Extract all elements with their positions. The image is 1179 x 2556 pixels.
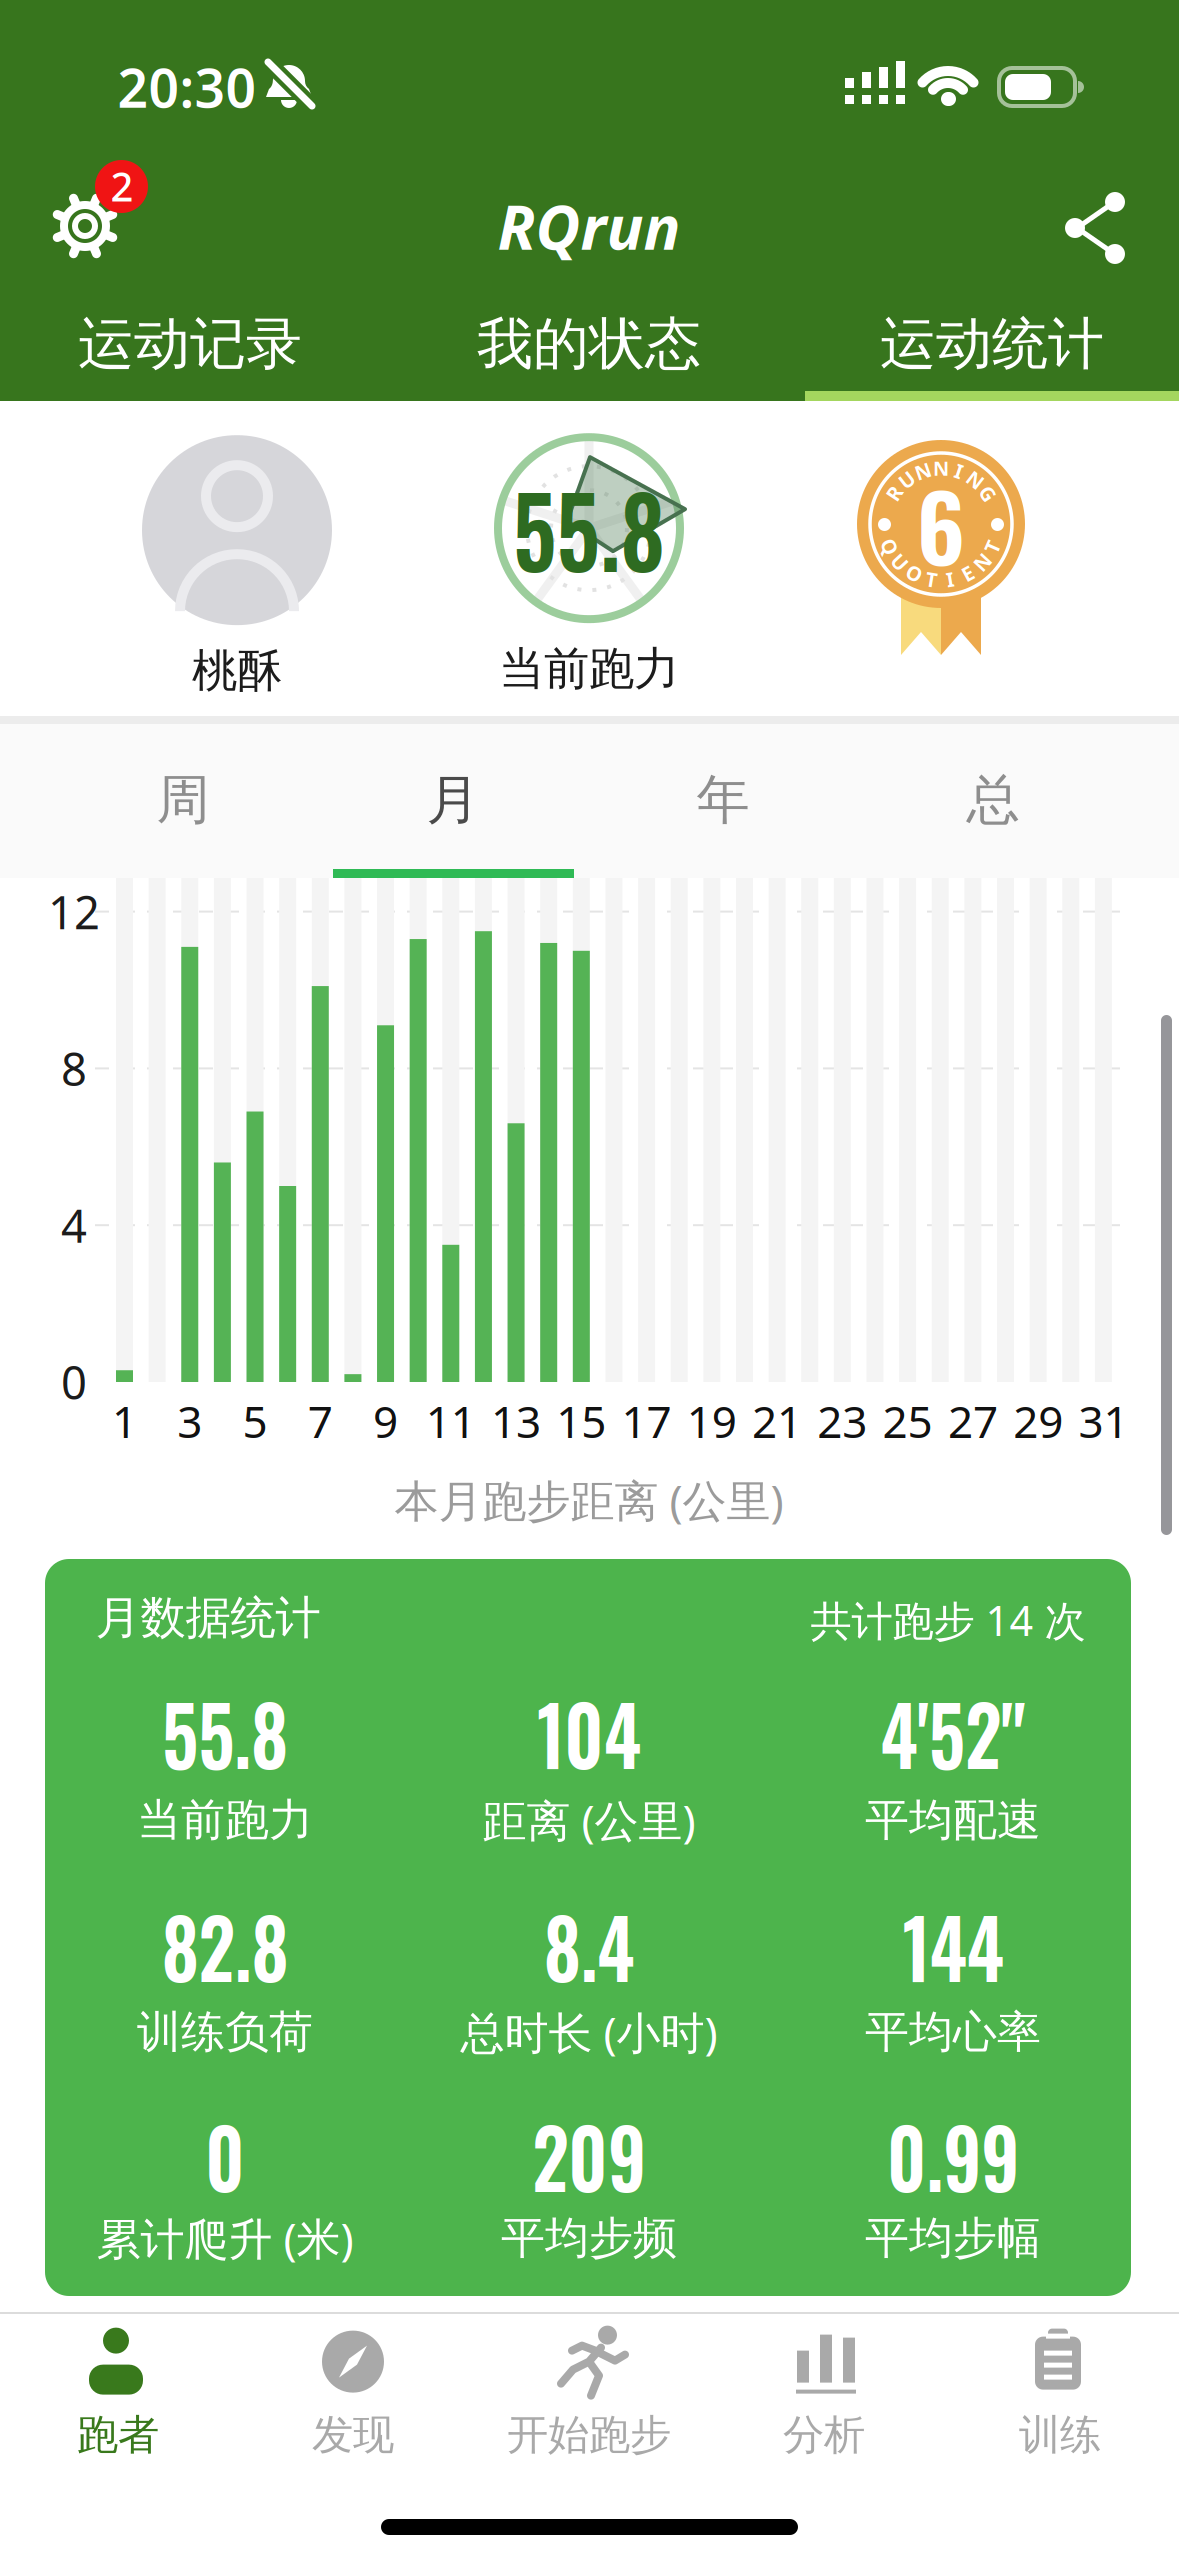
staticText: 4 — [61, 1195, 87, 1255]
staticText: 分析 — [783, 2410, 865, 2460]
staticText: 21 — [752, 1392, 802, 1450]
staticText: 当前跑力 — [499, 641, 679, 697]
staticText: 平均配速 — [865, 1793, 1041, 1847]
staticText: 13 — [491, 1392, 541, 1450]
staticText: 本月跑步距离 (公里) — [394, 1471, 783, 1529]
staticText: I — [955, 458, 963, 484]
staticText: 训练 — [1019, 2410, 1101, 2460]
staticText: 2 — [110, 159, 133, 212]
staticText: 29 — [1013, 1392, 1063, 1450]
staticText: 7 — [308, 1392, 333, 1450]
staticText: 跑者 — [77, 2410, 159, 2460]
button[interactable]: Share — [1060, 192, 1132, 264]
staticText: 运动统计 — [880, 310, 1104, 378]
staticText: 4'52" — [870, 1671, 1035, 1793]
staticText: N — [967, 466, 983, 493]
staticText: 6 — [916, 456, 965, 592]
staticText: 当前跑力 — [137, 1793, 313, 1847]
button[interactable]: 跑者 — [3, 2319, 233, 2465]
staticText: I — [946, 566, 954, 593]
button[interactable]: 桃酥 — [142, 435, 332, 699]
button[interactable]: 开始跑步 — [474, 2319, 704, 2465]
staticText: 27 — [948, 1392, 998, 1450]
staticText: 55.8 — [503, 456, 674, 600]
staticText: 17 — [622, 1392, 672, 1450]
staticText: U — [892, 549, 907, 575]
staticText: 82.8 — [153, 1884, 297, 2006]
button[interactable]: 发现 — [238, 2319, 468, 2465]
staticText: 25 — [883, 1392, 933, 1450]
staticText: O — [906, 560, 922, 587]
staticText: Q — [882, 533, 898, 560]
staticText: 9 — [373, 1392, 398, 1450]
button[interactable]: 运动统计 — [802, 299, 1179, 389]
staticText: 5 — [242, 1392, 267, 1450]
staticText: 月数据统计 — [95, 1590, 320, 1646]
staticText: 104 — [530, 1671, 648, 1793]
staticText: 总 — [966, 767, 1019, 833]
staticText: 19 — [687, 1392, 737, 1450]
staticText: 距离 (公里) — [482, 1791, 695, 1849]
staticText: 15 — [556, 1392, 606, 1450]
staticText: 209 — [524, 2094, 653, 2216]
staticText: U — [899, 466, 914, 493]
staticText: 桃酥 — [192, 643, 282, 699]
staticText: 月 — [426, 767, 479, 833]
staticText: 发现 — [312, 2410, 394, 2460]
staticText: 开始跑步 — [507, 2410, 671, 2460]
staticText: 0 — [61, 1352, 87, 1412]
staticText: 31 — [1078, 1392, 1128, 1450]
staticText: E — [962, 560, 973, 587]
staticText: N — [933, 455, 949, 481]
staticText: 0.99 — [878, 2094, 1028, 2216]
staticText: T — [986, 533, 998, 560]
staticText: 8 — [61, 1038, 87, 1098]
staticText: 12 — [48, 881, 100, 942]
staticText: N — [915, 458, 931, 484]
staticText: 144 — [895, 1884, 1010, 2006]
staticText: 平均心率 — [865, 2005, 1041, 2059]
staticText: 平均步频 — [501, 2211, 677, 2265]
button[interactable]: 训练 — [945, 2319, 1175, 2465]
button[interactable]: 周 — [48, 740, 318, 860]
staticText: 周 — [156, 767, 209, 833]
staticText: N — [974, 549, 990, 575]
staticText: 训练负荷 — [137, 2005, 313, 2059]
staticText: 55.8 — [153, 1671, 296, 1793]
staticText: R — [888, 480, 901, 507]
button[interactable]: 月 — [318, 740, 588, 860]
staticText: 3 — [177, 1392, 202, 1450]
button[interactable]: 运动记录 — [0, 299, 380, 389]
staticText: 共计跑步 14 次 — [810, 1593, 1085, 1647]
button[interactable]: Running Quotient badge — [856, 440, 1026, 678]
staticText: 8.4 — [537, 1884, 640, 2006]
staticText: RQrun — [497, 185, 680, 267]
staticText: T — [926, 566, 938, 593]
staticText: 1 — [112, 1392, 137, 1450]
staticText: G — [981, 480, 995, 507]
button[interactable]: 年 — [588, 740, 858, 860]
staticText: 20:30 — [117, 52, 256, 122]
staticText: 累计爬升 (米) — [96, 2209, 353, 2267]
button[interactable]: Settings — [53, 194, 117, 258]
staticText: 11 — [426, 1392, 476, 1450]
staticText: 运动记录 — [78, 310, 302, 378]
staticText: 我的状态 — [477, 310, 701, 378]
button[interactable]: 我的状态 — [399, 299, 779, 389]
staticText: 平均步幅 — [865, 2211, 1041, 2265]
staticText: 总时长 (小时) — [460, 2003, 717, 2061]
button[interactable]: 分析 — [709, 2319, 939, 2465]
button[interactable]: 55.8 — [484, 435, 694, 697]
staticText: 年 — [696, 767, 749, 833]
button[interactable]: 总 — [858, 740, 1128, 860]
staticText: 23 — [817, 1392, 867, 1450]
staticText: 0 — [202, 2094, 247, 2216]
